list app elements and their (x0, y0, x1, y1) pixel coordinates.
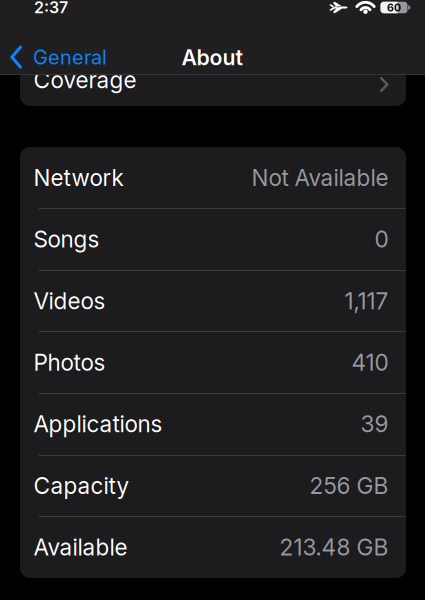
staticText: General (33, 45, 107, 69)
staticText: Photos (33, 349, 105, 376)
staticText: Capacity (33, 472, 129, 499)
staticText: 0 (374, 226, 388, 253)
staticText: Network (33, 164, 123, 191)
staticText: Available (33, 533, 127, 561)
staticText: Not Available (251, 164, 388, 191)
staticText: 39 (360, 410, 388, 438)
staticText: About (181, 45, 243, 70)
staticText: 256 GB (309, 472, 388, 499)
staticText: Songs (33, 226, 99, 253)
staticText: 1,117 (344, 287, 388, 315)
staticText: 2:37 (34, 0, 68, 17)
button[interactable]: Back (10, 45, 107, 69)
button[interactable]: Coverage (20, 56, 406, 106)
staticText: 410 (351, 349, 388, 376)
staticText: Videos (33, 287, 105, 315)
staticText: Coverage (33, 66, 136, 94)
staticText: Applications (33, 410, 162, 438)
staticText: 213.48 GB (279, 533, 388, 561)
staticText: 60 (387, 1, 401, 14)
